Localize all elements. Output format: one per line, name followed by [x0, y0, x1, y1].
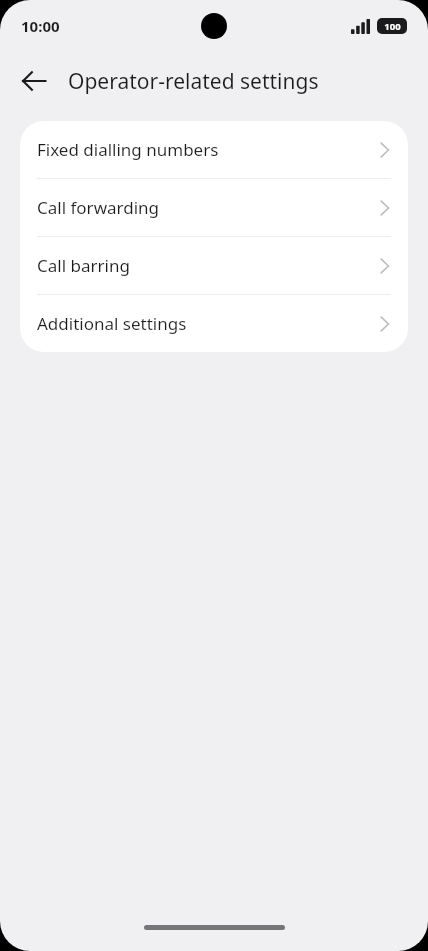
button[interactable]: Call forwarding — [20, 179, 408, 236]
staticText: Operator-related settings — [68, 67, 319, 96]
staticText: 10:00 — [21, 16, 60, 36]
button[interactable]: Back — [10, 57, 58, 105]
staticText: Call barring — [37, 254, 377, 277]
staticText: Call forwarding — [37, 196, 377, 219]
staticText: 100 — [384, 20, 401, 33]
button[interactable]: Additional settings — [20, 295, 408, 352]
button[interactable]: Call barring — [20, 237, 408, 294]
staticText: Fixed dialling numbers — [37, 138, 377, 161]
staticText: Additional settings — [37, 312, 377, 335]
button[interactable]: Fixed dialling numbers — [20, 121, 408, 178]
